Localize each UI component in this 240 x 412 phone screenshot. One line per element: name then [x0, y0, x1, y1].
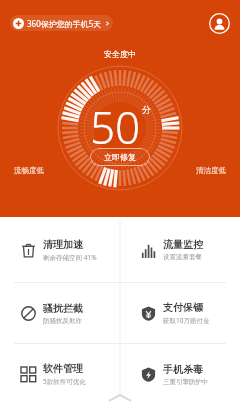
- button[interactable]: 支付保镖: [120, 283, 240, 343]
- staticText: 设置流量套餐: [163, 253, 202, 261]
- button[interactable]: 360保护您的手机5天: [10, 15, 113, 31]
- button[interactable]: 手机杀毒: [120, 344, 240, 404]
- staticText: 支付保镖: [163, 301, 203, 314]
- staticText: 安全度中: [104, 49, 136, 59]
- staticText: 立即修复: [104, 152, 136, 162]
- button[interactable]: 流量监控: [120, 217, 240, 282]
- staticText: 软件管理: [43, 362, 83, 375]
- staticText: 防骚扰反欺诈: [43, 317, 82, 325]
- staticText: 清洁度低: [196, 166, 226, 175]
- staticText: 清理加速: [43, 238, 83, 251]
- button[interactable]: Expand: [105, 392, 135, 404]
- button[interactable]: 立即修复: [90, 148, 150, 166]
- staticText: 流量监控: [163, 238, 203, 251]
- button[interactable]: 软件管理: [0, 344, 120, 404]
- staticText: 分: [142, 104, 151, 115]
- staticText: 手机杀毒: [163, 363, 203, 376]
- button[interactable]: 骚扰拦截: [0, 283, 120, 343]
- button[interactable]: 清理加速: [0, 217, 120, 282]
- staticText: 骚扰拦截: [43, 302, 83, 315]
- button[interactable]: Account: [207, 11, 231, 35]
- staticText: 剩余存储空间 41%: [43, 253, 97, 262]
- staticText: 三重引擎防护中: [163, 378, 209, 386]
- staticText: 获取10万赔付金: [163, 316, 210, 325]
- staticText: 360保护您的手机5天: [27, 18, 102, 29]
- staticText: 流畅度低: [14, 166, 44, 175]
- staticText: 50: [90, 97, 141, 157]
- staticText: 5款软件可优化: [43, 377, 86, 386]
